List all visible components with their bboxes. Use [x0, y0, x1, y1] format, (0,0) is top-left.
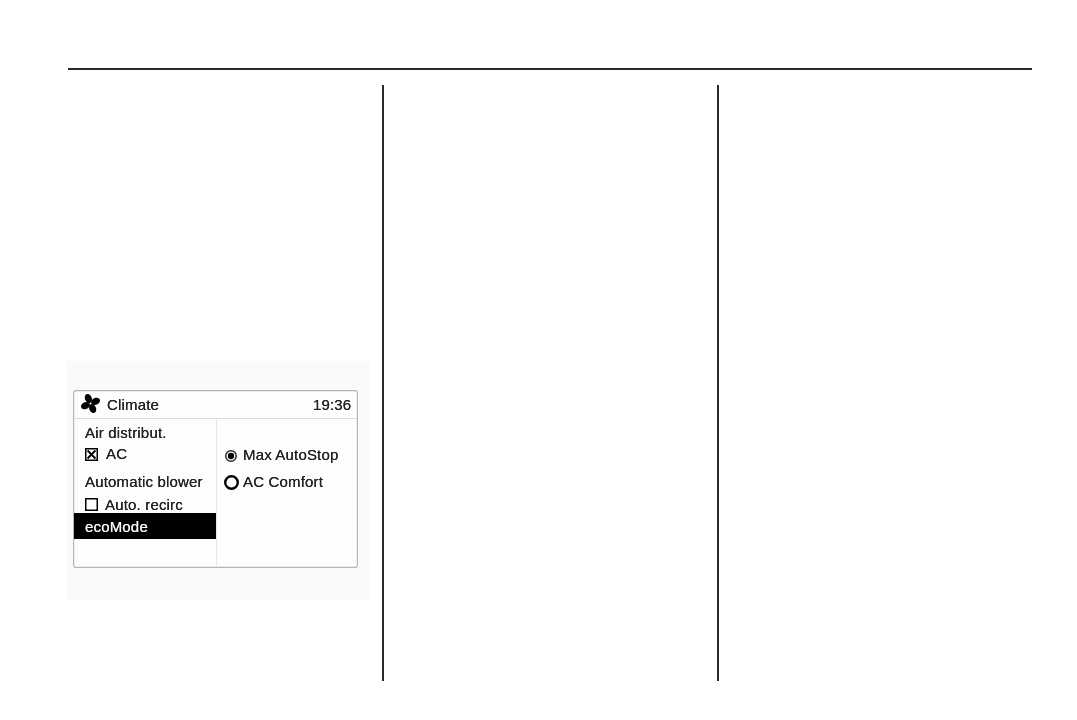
staticText: ecoMode: [85, 518, 148, 535]
staticText: Max AutoStop: [243, 446, 339, 463]
other: Unchecked: [85, 498, 98, 511]
staticText: Auto. recirc: [105, 496, 183, 513]
staticText: Max AutoStop: [243, 446, 339, 463]
staticText: Automatic blower: [85, 473, 203, 490]
button[interactable]: Checked: [74, 445, 216, 466]
staticText: 19:36: [313, 396, 352, 413]
staticText: Air distribut.: [85, 424, 167, 441]
other: Climate: [80, 393, 101, 414]
staticText: Climate: [107, 396, 160, 413]
other: Not selected: [224, 475, 239, 490]
staticText: Climate: [107, 396, 160, 413]
other: Checked: [85, 448, 98, 461]
staticText: Max AutoStop: [243, 446, 339, 463]
staticText: AC Comfort: [243, 473, 324, 490]
button[interactable]: ecoMode: [74, 513, 216, 539]
staticText: Air distribut.: [85, 424, 167, 441]
staticText: AC Comfort: [243, 473, 324, 490]
staticText: 19:36: [313, 396, 352, 413]
button[interactable]: Selected: [218, 446, 356, 468]
staticText: AC: [106, 445, 128, 462]
staticText: Auto. recirc: [105, 496, 183, 513]
button[interactable]: Unchecked: [74, 495, 216, 514]
staticText: AC: [106, 445, 128, 462]
staticText: AC: [106, 445, 128, 462]
staticText: Auto. recirc: [105, 496, 183, 513]
button[interactable]: Climate: [73, 390, 358, 417]
staticText: Air distribut.: [85, 424, 167, 441]
other: Selected: [224, 449, 238, 463]
button[interactable]: Not selected: [218, 472, 356, 494]
staticText: AC Comfort: [243, 473, 324, 490]
staticText: Automatic blower: [85, 473, 203, 490]
staticText: Automatic blower: [85, 473, 203, 490]
staticText: Climate: [107, 396, 160, 413]
staticText: 19:36: [313, 396, 352, 413]
